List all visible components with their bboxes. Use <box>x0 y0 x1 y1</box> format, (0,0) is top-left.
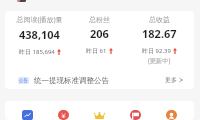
button[interactable]: 总阅读(播放)量 <box>10 15 69 56</box>
button[interactable]: 总粉丝 <box>69 15 129 55</box>
staticText: 总阅读(播放)量 <box>16 15 63 25</box>
staticText: 更多 <box>165 76 177 84</box>
button[interactable]: 总收益 <box>129 15 189 64</box>
staticText: 统一提现标准调整公告 <box>34 76 109 85</box>
button[interactable]: 消息 <box>130 110 141 120</box>
staticText: 公告 <box>19 78 28 84</box>
staticText: 438,104 <box>19 27 60 42</box>
button[interactable]: 会员 <box>94 110 105 120</box>
staticText: 182.67 <box>142 26 177 41</box>
staticText: 昨日 92.39 <box>142 47 171 55</box>
staticText: 昨日 185,694 <box>19 48 55 56</box>
staticText: 206 <box>90 26 109 41</box>
button[interactable]: 客服 <box>166 110 177 120</box>
staticText: (更新中) <box>148 56 171 64</box>
staticText: 昨日 61 <box>86 47 107 55</box>
staticText: 总收益 <box>149 15 170 24</box>
button[interactable]: 数据 <box>22 110 33 120</box>
button[interactable]: 收益 <box>58 110 69 120</box>
staticText: 总粉丝 <box>89 15 110 24</box>
button[interactable]: 公告 <box>5 73 194 87</box>
